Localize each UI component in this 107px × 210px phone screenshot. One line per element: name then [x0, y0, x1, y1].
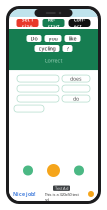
button[interactable]: Correct — [68, 19, 90, 27]
staticText: Correct — [44, 57, 62, 64]
button[interactable]: Settings — [74, 165, 84, 175]
staticText: does — [70, 75, 82, 82]
staticText: Re-start — [47, 16, 59, 30]
button[interactable]: Play — [23, 165, 33, 175]
staticText: cycling — [38, 45, 55, 52]
staticText: Correct — [73, 16, 85, 30]
staticText: Test Ad — [55, 185, 68, 191]
button[interactable]: Hint — [47, 164, 60, 177]
staticText: Do — [30, 35, 37, 42]
staticText: This is a 320x50 test ad. — [44, 192, 78, 202]
button[interactable]: Re-start — [42, 19, 64, 27]
button[interactable]: Set 1 size — [16, 19, 38, 27]
staticText: like — [68, 35, 76, 42]
staticText: you — [48, 35, 57, 42]
staticText: ? — [66, 45, 68, 52]
staticText: Set 1 size — [21, 16, 33, 30]
staticText: Nice job! — [13, 190, 35, 198]
staticText: do — [73, 95, 79, 102]
